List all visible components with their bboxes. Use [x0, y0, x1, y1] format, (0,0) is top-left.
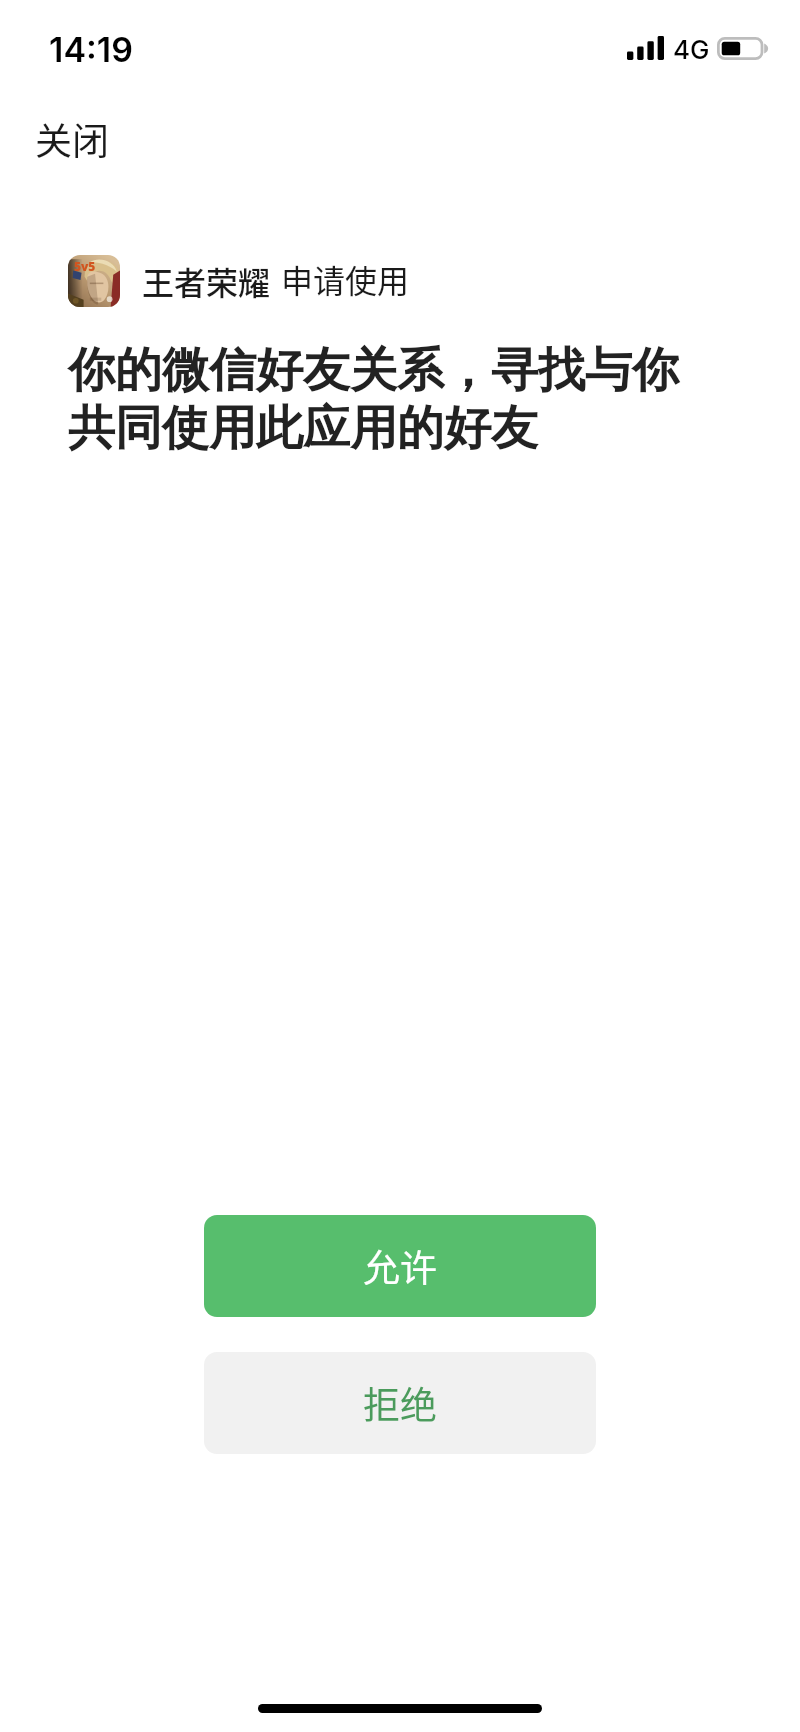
other: Battery level: [717, 37, 770, 60]
staticText: 14:19: [49, 29, 133, 70]
staticText: 你的微信好友关系，寻找与你共同使用此应用的好友: [68, 341, 698, 458]
staticText: 申请使用: [281, 256, 410, 302]
other: Home indicator: [258, 1704, 542, 1713]
staticText: 王者荣耀: [142, 258, 271, 304]
other: 王者荣耀 app icon: [68, 255, 120, 307]
button[interactable]: 允许: [204, 1215, 596, 1317]
staticText: 5v5: [74, 258, 96, 274]
button[interactable]: 关闭: [20, 100, 124, 178]
staticText: 拒绝: [363, 1376, 437, 1430]
other: Cellular signal strength: [627, 36, 664, 60]
staticText: 允许: [363, 1239, 437, 1293]
staticText: 关闭: [35, 112, 109, 166]
button[interactable]: 拒绝: [204, 1352, 596, 1454]
staticText: 4G: [673, 34, 710, 65]
